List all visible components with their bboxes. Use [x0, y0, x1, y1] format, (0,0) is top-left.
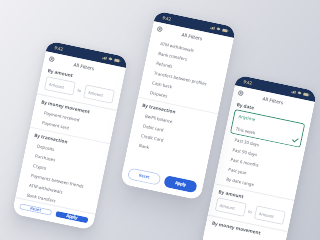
button[interactable]: Credit Card	[129, 128, 212, 154]
button[interactable]: Past 90 days	[221, 142, 303, 169]
staticText: 9:42	[243, 79, 253, 87]
staticText: Past 90 days	[232, 146, 259, 157]
staticText: All Filters	[73, 61, 96, 73]
button[interactable]: By date range	[215, 171, 297, 198]
staticText: Past 30 days	[234, 136, 261, 148]
button[interactable]: Deposits	[25, 138, 108, 165]
staticText: By money movement	[211, 220, 262, 236]
button[interactable]: Anytime	[230, 109, 305, 148]
staticText: Reset	[30, 205, 42, 214]
staticText: By date	[236, 101, 255, 111]
button[interactable]: Close	[154, 24, 165, 34]
button[interactable]: Debit card	[131, 118, 214, 145]
staticText: Purchases	[35, 152, 56, 163]
button[interactable]: Past 6 months	[219, 152, 301, 178]
staticText: Amount	[258, 211, 275, 219]
button[interactable]: Apply	[163, 175, 198, 193]
staticText: ATM withdrawals	[28, 182, 64, 195]
button[interactable]: BwPli balance	[133, 108, 216, 135]
button[interactable]: Past year	[217, 162, 299, 188]
staticText: By money movement	[41, 98, 91, 115]
button[interactable]: Crypto	[21, 158, 104, 184]
staticText: to	[77, 88, 82, 93]
button[interactable]: Amount	[44, 76, 76, 96]
button[interactable]: Close	[46, 54, 57, 64]
button[interactable]: Transfers between profiles	[142, 65, 225, 92]
staticText: Amount	[49, 82, 65, 90]
staticText: Deposits	[37, 143, 55, 152]
button[interactable]: Bank	[127, 138, 210, 164]
staticText: Crypto	[33, 162, 47, 171]
staticText: All Filters	[262, 95, 285, 107]
staticText: 9:42	[54, 45, 64, 53]
button[interactable]: Refunds	[144, 55, 227, 82]
staticText: By amount	[218, 188, 245, 199]
button[interactable]: Amount	[83, 84, 115, 104]
staticText: By transaction	[34, 132, 68, 145]
button[interactable]: ATM withdrawals	[17, 177, 100, 204]
staticText: By date range	[226, 176, 255, 187]
button[interactable]: ATM withdrawals	[149, 36, 231, 62]
staticText: By amount	[47, 67, 74, 78]
button[interactable]: Payments between friends	[19, 168, 102, 194]
staticText: All Filters	[181, 31, 204, 43]
staticText: Apply	[66, 213, 79, 221]
staticText: Refunds	[156, 60, 174, 69]
staticText: ATM withdrawals	[160, 40, 195, 53]
staticText: This week	[235, 125, 256, 135]
staticText: Debit card	[143, 122, 164, 133]
staticText: Payment received	[44, 109, 80, 122]
button[interactable]: Past 30 days	[223, 132, 305, 159]
button[interactable]: Close	[235, 88, 246, 98]
staticText: Reset	[138, 172, 150, 181]
staticText: Bank transfers	[158, 50, 188, 62]
staticText: Credit Card	[141, 132, 164, 143]
staticText: Amount	[219, 203, 236, 211]
staticText: 9:42	[162, 15, 172, 23]
button[interactable]: Reset	[127, 167, 162, 186]
button[interactable]: Apply	[55, 211, 89, 223]
staticText: Payments between friends	[30, 172, 85, 189]
button[interactable]: Amount	[254, 205, 286, 225]
staticText: Amount	[88, 90, 104, 98]
button[interactable]: Disputes	[138, 85, 221, 111]
staticText: Cash back	[152, 79, 173, 89]
button[interactable]: Cash back	[140, 75, 223, 102]
staticText: By transaction	[142, 102, 176, 115]
staticText: Transfers between profiles	[154, 69, 208, 86]
staticText: Anytime	[238, 113, 257, 122]
button[interactable]: Reset	[19, 203, 52, 216]
staticText: Payment sent	[42, 119, 70, 131]
button[interactable]: Purchases	[23, 148, 106, 175]
staticText: to	[248, 209, 253, 214]
staticText: BwPli balance	[145, 113, 173, 124]
button[interactable]: Bank transfers	[147, 46, 229, 72]
staticText: Past year	[228, 166, 248, 176]
button[interactable]: Bank transfers	[15, 187, 97, 214]
staticText: Past 6 months	[230, 156, 259, 168]
button[interactable]: Amount	[215, 197, 247, 217]
button[interactable]: Payment received	[32, 105, 115, 132]
staticText: Bank	[138, 142, 150, 150]
staticText: Bank transfers	[26, 191, 57, 203]
staticText: Apply	[174, 180, 187, 188]
staticText: Disputes	[150, 89, 168, 99]
button[interactable]: Payment sent	[30, 115, 113, 141]
